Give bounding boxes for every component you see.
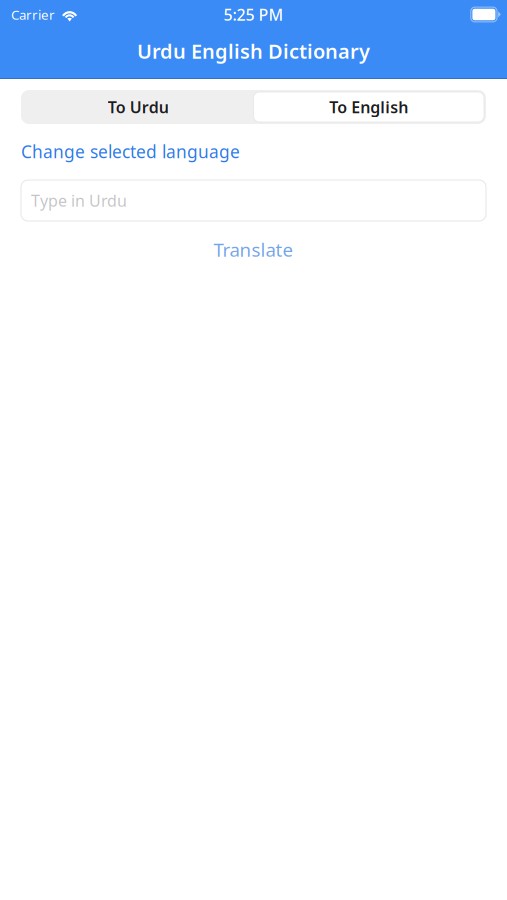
button[interactable]: Change selected language — [21, 140, 240, 163]
staticText: Carrier — [11, 6, 55, 23]
staticText: Urdu English Dictionary — [137, 38, 370, 64]
button[interactable]: To Urdu — [23, 92, 253, 122]
staticText: To Urdu — [108, 96, 169, 118]
staticText: To English — [329, 96, 408, 118]
button[interactable]: To English — [253, 92, 484, 122]
staticText: Type in Urdu — [31, 190, 127, 211]
staticText: Change selected language — [21, 140, 240, 163]
staticText: Translate — [213, 237, 293, 262]
button[interactable]: Translate — [21, 237, 486, 262]
staticText: 5:25 PM — [223, 4, 283, 25]
button[interactable]: Type in Urdu — [21, 180, 486, 221]
